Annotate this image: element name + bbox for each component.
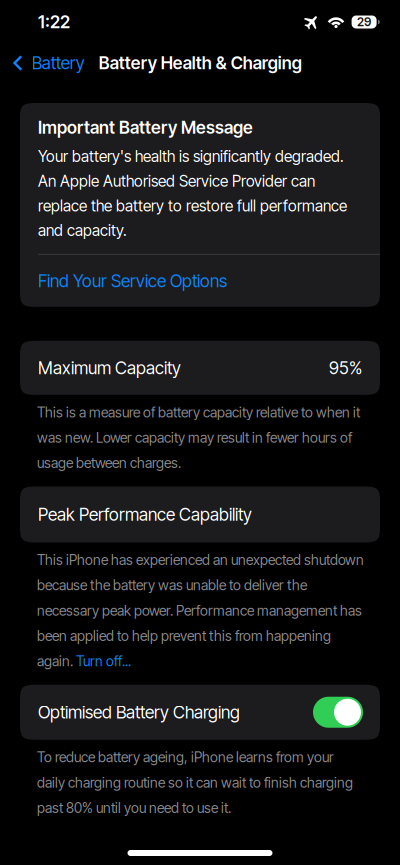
staticText: Turn off... <box>76 653 131 670</box>
button[interactable]: Battery <box>0 43 99 83</box>
staticText: To reduce battery ageing, iPhone learns … <box>37 749 353 816</box>
staticText: This iPhone has experienced an unexpecte… <box>37 551 364 644</box>
button[interactable]: Turn off... <box>76 653 131 670</box>
staticText: Important Battery Message <box>38 117 253 138</box>
staticText: Battery <box>32 52 85 73</box>
button[interactable]: Find Your Service Options <box>20 255 380 307</box>
staticText: Peak Performance Capability <box>38 504 252 525</box>
staticText: Battery Health & Charging <box>99 52 302 73</box>
staticText: Optimised Battery Charging <box>38 702 240 723</box>
staticText: 29 <box>357 15 371 29</box>
staticText: 95% <box>329 357 362 378</box>
staticText: again. <box>37 653 76 670</box>
staticText: Maximum Capacity <box>38 357 181 378</box>
staticText: Find Your Service Options <box>38 270 227 291</box>
staticText: Your battery's health is significantly d… <box>38 147 347 240</box>
staticText: This is a measure of battery capacity re… <box>37 404 360 471</box>
button[interactable]: Optimised Battery Charging <box>20 685 380 740</box>
staticText: 1:22 <box>38 11 70 32</box>
